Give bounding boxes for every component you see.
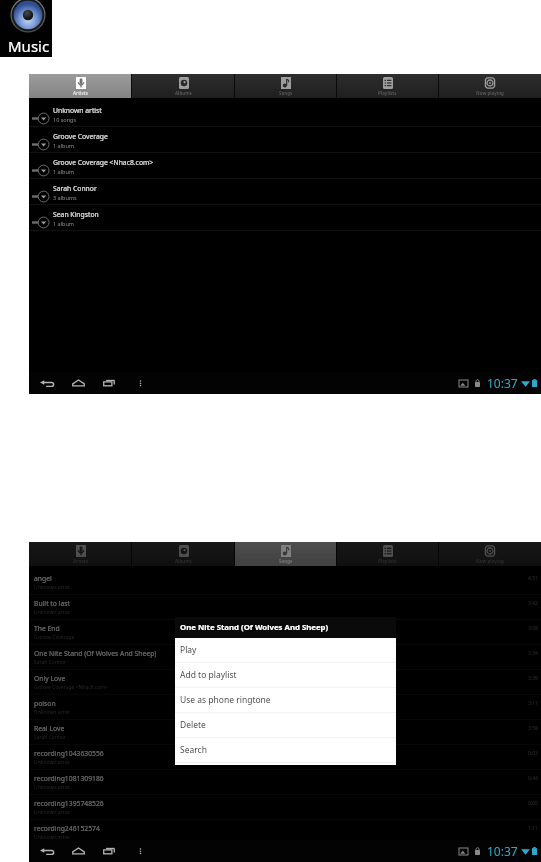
staticText: recording1081309186: [34, 774, 104, 783]
staticText: Artists: [73, 90, 88, 96]
staticText: Songs: [279, 90, 293, 96]
staticText: 1 album: [53, 220, 75, 227]
staticText: Groove Coverage: [53, 132, 108, 141]
staticText: 10:37: [487, 375, 518, 391]
button[interactable]: Albums: [132, 74, 234, 98]
staticText: 1:11: [528, 825, 538, 832]
button[interactable]: Now playing: [439, 542, 541, 566]
button[interactable]: recording246152574: [34, 820, 538, 840]
staticText: Now playing: [476, 558, 504, 564]
button[interactable]: Back: [38, 842, 56, 860]
button[interactable]: One Nite Stand (Of Wolves And Sheep): [34, 645, 538, 669]
staticText: Sean Kingston: [53, 210, 99, 219]
staticText: 3:34: [528, 650, 538, 657]
staticText: 10 songs: [53, 116, 77, 123]
staticText: Unknown artist: [34, 809, 70, 816]
button[interactable]: recording1043630556: [34, 745, 538, 769]
button[interactable]: Groove Coverage <Nhac8.com>: [29, 153, 541, 178]
button[interactable]: Sarah Connor: [29, 179, 541, 204]
button[interactable]: Playlists: [337, 542, 438, 566]
button[interactable]: Sean Kingston: [29, 205, 541, 230]
button[interactable]: Recent apps: [100, 374, 118, 392]
staticText: Groove Coverage: [34, 634, 75, 641]
staticText: 0:05: [528, 800, 538, 807]
button[interactable]: Delete: [180, 713, 396, 737]
staticText: 10:37: [487, 843, 518, 859]
staticText: 3:58: [528, 725, 538, 732]
staticText: recording246152574: [34, 824, 100, 833]
staticText: recording1043630556: [34, 749, 104, 758]
button[interactable]: More options: [131, 842, 149, 860]
staticText: Albums: [175, 90, 192, 96]
staticText: 1 album: [53, 142, 75, 149]
staticText: Unknown artist: [34, 584, 70, 591]
button[interactable]: Real Love: [34, 720, 538, 744]
staticText: One Nite Stand (Of Wolves And Sheep): [34, 649, 157, 658]
staticText: poison: [34, 699, 56, 708]
staticText: Unknown artist: [53, 106, 102, 115]
staticText: angel: [34, 574, 52, 583]
button[interactable]: Albums: [132, 542, 234, 566]
button[interactable]: recording1395748526: [34, 795, 538, 819]
button[interactable]: Built to last: [34, 595, 538, 619]
staticText: 4:51: [528, 575, 538, 582]
staticText: Play: [180, 644, 197, 656]
staticText: The End: [34, 624, 60, 633]
staticText: recording1395748526: [34, 799, 104, 808]
staticText: 3:11: [528, 700, 538, 707]
button[interactable]: angel: [34, 570, 538, 594]
button[interactable]: Songs: [235, 74, 336, 98]
staticText: Artists: [73, 558, 88, 564]
staticText: Add to playlist: [180, 669, 237, 681]
staticText: 0:03: [528, 750, 538, 757]
button[interactable]: poison: [34, 695, 538, 719]
staticText: Sarah Connor: [34, 659, 67, 666]
button[interactable]: Artists: [29, 74, 131, 98]
staticText: Songs: [279, 558, 293, 564]
button[interactable]: Artists: [29, 542, 131, 566]
staticText: Only Love: [34, 674, 66, 683]
staticText: Search: [180, 744, 207, 756]
button[interactable]: Home: [69, 374, 87, 392]
button[interactable]: recording1081309186: [34, 770, 538, 794]
button[interactable]: Use as phone ringtone: [180, 688, 396, 712]
staticText: 3 albums: [53, 194, 77, 201]
staticText: 3:39: [528, 675, 538, 682]
staticText: One Nite Stand (Of Wolves And Sheep): [180, 622, 329, 633]
button[interactable]: Songs: [235, 542, 336, 566]
staticText: Unknown artist: [34, 834, 70, 840]
staticText: Now playing: [476, 90, 504, 96]
staticText: Use as phone ringtone: [180, 694, 271, 706]
button[interactable]: Recent apps: [100, 842, 118, 860]
button[interactable]: The End: [34, 620, 538, 644]
button[interactable]: More options: [131, 374, 149, 392]
button[interactable]: Unknown artist: [29, 101, 541, 126]
staticText: Real Love: [34, 724, 65, 733]
staticText: Sarah Connor: [53, 184, 97, 193]
button[interactable]: Playlists: [337, 74, 438, 98]
button[interactable]: Now playing: [439, 74, 541, 98]
staticText: Delete: [180, 719, 206, 731]
button[interactable]: Back: [38, 374, 56, 392]
staticText: Unknown artist: [34, 759, 70, 766]
button[interactable]: Add to playlist: [180, 663, 396, 687]
staticText: Unknown artist: [34, 784, 70, 791]
staticText: Sarah Connor: [34, 734, 67, 741]
staticText: Groove Coverage <Nhac8.com>: [53, 158, 154, 167]
staticText: Built to last: [34, 599, 70, 608]
staticText: Groove Coverage <Nhac8.com>: [34, 684, 108, 691]
staticText: Albums: [175, 558, 192, 564]
staticText: 3:42: [528, 600, 538, 607]
staticText: Unknown artist: [34, 709, 70, 716]
button[interactable]: Groove Coverage: [29, 127, 541, 152]
staticText: 0:44: [528, 775, 538, 782]
staticText: 1 album: [53, 168, 75, 175]
button[interactable]: Home: [69, 842, 87, 860]
staticText: 3:08: [528, 625, 538, 632]
button[interactable]: Search: [180, 738, 396, 762]
staticText: Playlists: [378, 90, 397, 96]
staticText: Music: [8, 36, 50, 56]
staticText: Unknown artist: [34, 609, 70, 616]
button[interactable]: Play: [180, 638, 396, 662]
button[interactable]: Only Love: [34, 670, 538, 694]
